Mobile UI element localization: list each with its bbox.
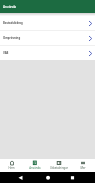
staticText: Använda [29, 166, 41, 170]
button[interactable]: Omprövning [0, 31, 95, 45]
button[interactable]: VAB [0, 46, 95, 60]
staticText: VAB [3, 51, 89, 55]
button[interactable]: Hem [0, 161, 23, 170]
staticText: Utbetalningar [50, 166, 68, 170]
staticText: Hem [8, 166, 15, 170]
button[interactable]: Mer [71, 161, 95, 170]
staticText: Använda [3, 5, 17, 9]
button[interactable]: Använda [23, 161, 47, 170]
staticText: Mer [80, 166, 86, 170]
button[interactable]: Utbetalningar [47, 161, 71, 170]
staticText: Omprövning [3, 36, 89, 40]
button[interactable]: Bostadsbidrag [0, 16, 95, 30]
staticText: Bostadsbidrag [3, 21, 89, 25]
